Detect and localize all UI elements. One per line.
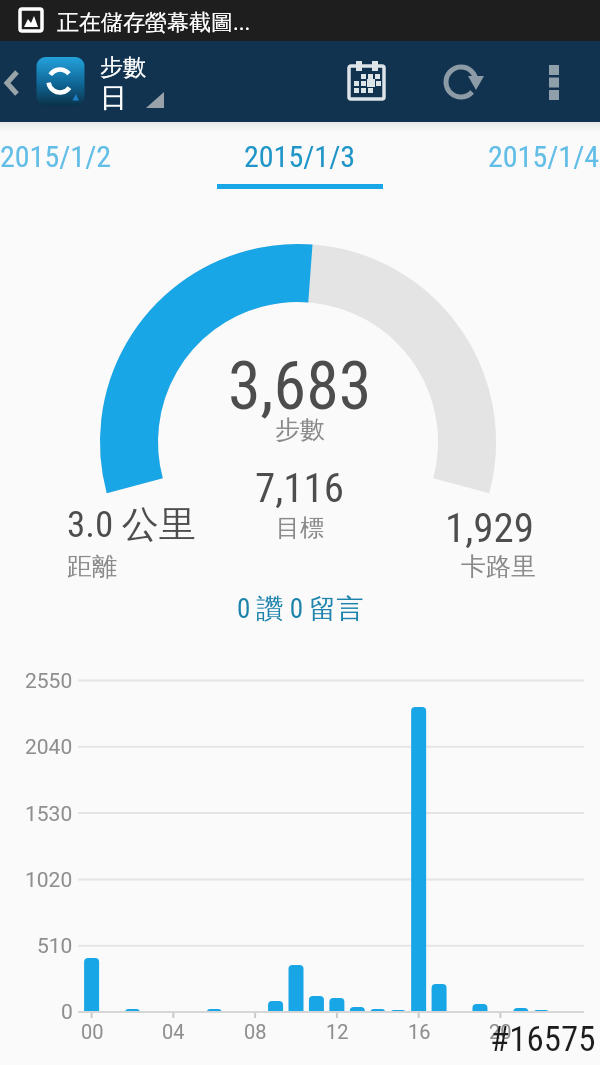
staticText: 20: [489, 1020, 512, 1043]
staticText: 0: [61, 1000, 73, 1025]
staticText: 7,116: [255, 464, 345, 512]
staticText: 1530: [25, 802, 73, 827]
staticText: 1020: [25, 868, 73, 893]
button[interactable]: [532, 41, 576, 122]
button[interactable]: 2015/1/2: [0, 139, 140, 174]
staticText: 1,929: [445, 504, 535, 552]
staticText: 步數: [275, 414, 325, 445]
staticText: 3.0 公里: [67, 501, 196, 548]
staticText: 日: [100, 81, 127, 115]
staticText: 2550: [25, 669, 73, 694]
staticText: 卡路里: [461, 551, 536, 582]
button[interactable]: 步數: [30, 41, 170, 122]
staticText: 510: [37, 934, 73, 959]
staticText: 正在儲存螢幕截圖...: [57, 9, 251, 37]
staticText: 3,683: [228, 348, 372, 425]
staticText: 04: [162, 1020, 185, 1043]
staticText: 2015/1/3: [244, 139, 356, 174]
button[interactable]: 2015/1/3: [244, 139, 356, 174]
button[interactable]: 0 讚 0 留言: [237, 592, 364, 626]
button[interactable]: 2015/1/4: [488, 139, 600, 174]
staticText: 16: [408, 1020, 431, 1043]
staticText: 2040: [25, 735, 73, 760]
staticText: 0 讚 0 留言: [237, 592, 364, 626]
staticText: 目標: [276, 513, 324, 543]
staticText: 08: [244, 1020, 267, 1043]
staticText: 2015/1/2: [0, 139, 112, 174]
button[interactable]: [435, 51, 491, 115]
staticText: 步數: [100, 53, 146, 82]
button[interactable]: [330, 51, 400, 115]
staticText: 距離: [67, 551, 117, 582]
staticText: 2015/1/4: [488, 139, 600, 174]
staticText: #16575: [490, 1019, 596, 1060]
staticText: 12: [326, 1020, 349, 1043]
staticText: 00: [81, 1020, 104, 1043]
button[interactable]: [0, 41, 28, 122]
